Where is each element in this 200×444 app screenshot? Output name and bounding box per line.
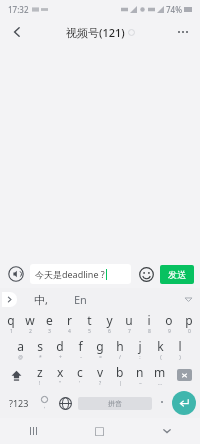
staticText: q: [7, 312, 15, 328]
button[interactable]: b: [110, 362, 130, 388]
staticText: (: [160, 354, 162, 361]
staticText: d: [56, 338, 64, 354]
staticText: 5: [88, 328, 91, 335]
staticText: 2: [29, 328, 32, 335]
button[interactable]: Hide keyboard: [133, 418, 200, 444]
button[interactable]: 今天是deadline ?: [30, 264, 131, 284]
button[interactable]: c: [70, 362, 90, 388]
button[interactable]: ?123: [4, 388, 34, 418]
staticText: ?: [99, 380, 102, 387]
staticText: @: [18, 354, 23, 361]
button[interactable]: 拼音: [78, 397, 152, 410]
button[interactable]: z: [30, 362, 50, 388]
button[interactable]: Emoji: [136, 264, 156, 284]
staticText: 6: [108, 328, 111, 335]
staticText: 9: [168, 328, 171, 335]
staticText: 拼音: [108, 399, 122, 408]
button[interactable]: m: [150, 362, 170, 388]
staticText: y: [106, 312, 113, 328]
staticText: j: [138, 338, 142, 354]
staticText: /: [119, 354, 121, 361]
staticText: 视频号(121): [66, 25, 125, 40]
staticText: a: [17, 338, 24, 354]
staticText: s: [37, 338, 43, 354]
button[interactable]: Expand candidates: [2, 292, 17, 307]
staticText: t: [87, 312, 92, 328]
button[interactable]: d: [50, 336, 70, 362]
button[interactable]: Hide candidates: [182, 293, 194, 305]
staticText: e: [46, 312, 53, 328]
button[interactable]: Emoji keyboard: [34, 388, 54, 418]
staticText: u: [125, 312, 133, 328]
button[interactable]: a: [10, 336, 30, 362]
button[interactable]: v: [90, 362, 110, 388]
staticText: 3: [48, 328, 51, 335]
button[interactable]: u: [119, 310, 139, 336]
staticText: 74%: [166, 4, 182, 15]
button[interactable]: Recent apps: [0, 418, 66, 444]
button[interactable]: k: [150, 336, 170, 362]
staticText: 8: [148, 328, 151, 335]
button[interactable]: Enter: [172, 391, 196, 415]
staticText: o: [165, 312, 173, 328]
staticText: x: [57, 364, 64, 380]
staticText: ?123: [9, 397, 29, 409]
button[interactable]: e: [39, 310, 59, 336]
staticText: …: [158, 380, 162, 387]
staticText: |: [119, 380, 122, 387]
staticText: k: [157, 338, 164, 354]
staticText: z: [37, 364, 43, 380]
button[interactable]: 发送: [160, 265, 194, 284]
button[interactable]: h: [110, 336, 130, 362]
button[interactable]: 中,: [30, 290, 52, 309]
button[interactable]: p: [179, 310, 199, 336]
staticText: v: [97, 364, 104, 380]
button[interactable]: w: [20, 310, 39, 336]
staticText: p: [185, 312, 193, 328]
button[interactable]: En: [70, 290, 91, 309]
button[interactable]: y: [99, 310, 119, 336]
staticText: *: [39, 354, 42, 361]
button[interactable]: t: [79, 310, 99, 336]
button[interactable]: x: [50, 362, 70, 388]
button[interactable]: Period: [152, 388, 172, 418]
staticText: w: [25, 312, 35, 328]
button[interactable]: r: [59, 310, 79, 336]
staticText: 0: [188, 328, 191, 335]
staticText: 4: [68, 328, 71, 335]
staticText: c: [77, 364, 83, 380]
staticText: h: [116, 338, 124, 354]
button[interactable]: f: [70, 336, 90, 362]
button[interactable]: Shift: [2, 362, 30, 388]
button[interactable]: j: [130, 336, 150, 362]
staticText: ,: [44, 403, 46, 410]
button[interactable]: Voice input: [6, 264, 26, 284]
button[interactable]: n: [130, 362, 150, 388]
button[interactable]: Home: [66, 418, 133, 444]
staticText: r: [67, 312, 72, 328]
button[interactable]: i: [139, 310, 159, 336]
button[interactable]: Backspace: [170, 362, 198, 388]
button[interactable]: More options: [166, 18, 200, 46]
staticText: 发送: [168, 269, 186, 280]
button[interactable]: s: [30, 336, 50, 362]
button[interactable]: l: [170, 336, 190, 362]
staticText: +: [59, 354, 62, 361]
button[interactable]: q: [1, 310, 20, 336]
staticText: b: [116, 364, 124, 380]
button[interactable]: Back: [0, 18, 34, 46]
button[interactable]: Change keyboard language: [54, 388, 76, 418]
staticText: l: [178, 338, 182, 354]
staticText: -: [80, 354, 82, 361]
staticText: g: [96, 338, 104, 354]
staticText: 17:32: [8, 4, 29, 15]
staticText: ): [179, 354, 181, 361]
staticText: En: [74, 292, 87, 307]
staticText: !: [39, 380, 41, 387]
staticText: 7: [128, 328, 131, 335]
button[interactable]: o: [159, 310, 179, 336]
staticText: :: [139, 354, 141, 361]
staticText: ": [59, 380, 62, 387]
staticText: 1: [10, 328, 13, 335]
button[interactable]: g: [90, 336, 110, 362]
